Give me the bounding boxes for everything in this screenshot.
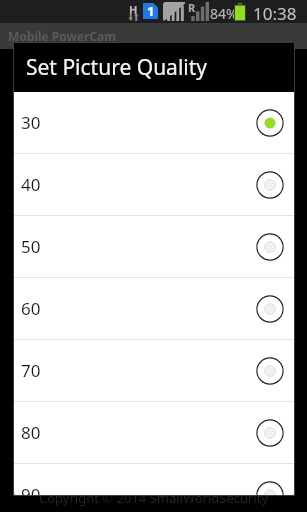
staticText: Mobile PowerCam: [8, 28, 116, 44]
staticText: Set Picture Quality: [26, 53, 208, 82]
staticText: 84%: [210, 4, 238, 23]
button[interactable]: 80: [14, 402, 294, 463]
staticText: 50: [21, 235, 41, 258]
button[interactable]: 60: [14, 278, 294, 339]
staticText: 90: [21, 483, 41, 495]
staticText: 80: [21, 421, 41, 444]
staticText: 1: [147, 2, 155, 18]
staticText: 10:38: [253, 2, 297, 25]
button[interactable]: 40: [14, 154, 294, 215]
staticText: 70: [21, 359, 41, 382]
staticText: H: [129, 2, 138, 17]
button[interactable]: 90: [14, 464, 294, 495]
button[interactable]: 50: [14, 216, 294, 277]
staticText: 60: [21, 297, 41, 320]
staticText: Copyright © 2014 SmallWorldSecurity: [39, 489, 269, 507]
button[interactable]: 70: [14, 340, 294, 401]
staticText: 40: [21, 173, 41, 196]
staticText: R: [188, 0, 196, 15]
staticText: 30: [21, 111, 41, 134]
button[interactable]: 30: [14, 92, 294, 153]
